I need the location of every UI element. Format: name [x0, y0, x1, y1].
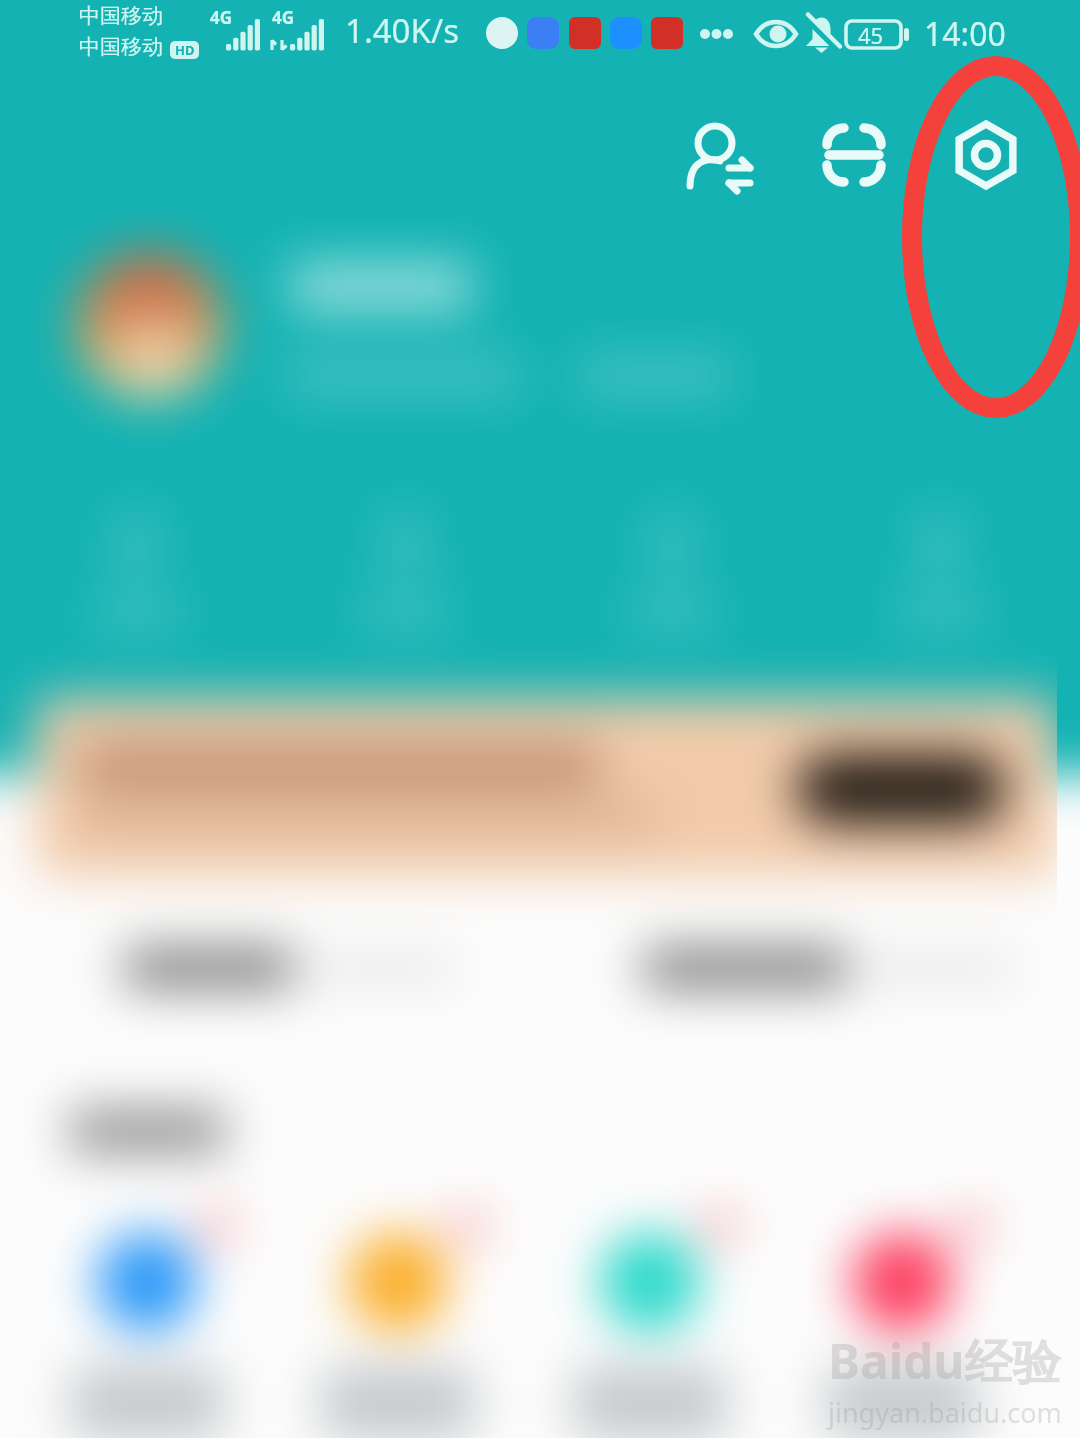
staticText: HD: [175, 41, 195, 59]
staticText: Baidu经验: [828, 1328, 1061, 1394]
staticText: jingyan.baidu.com: [828, 1394, 1062, 1431]
staticText: 4G: [210, 6, 233, 29]
staticText: 45: [858, 20, 884, 50]
staticText: 1.40K/s: [345, 8, 459, 53]
button[interactable]: Settings: [950, 119, 1022, 191]
button[interactable]: Scan code: [812, 113, 896, 197]
button[interactable]: Transfer to contact: [677, 110, 769, 202]
staticText: 中国移动: [79, 3, 163, 29]
staticText: 中国移动: [79, 34, 163, 60]
staticText: 4G: [272, 6, 295, 29]
staticText: 14:00: [924, 12, 1006, 56]
